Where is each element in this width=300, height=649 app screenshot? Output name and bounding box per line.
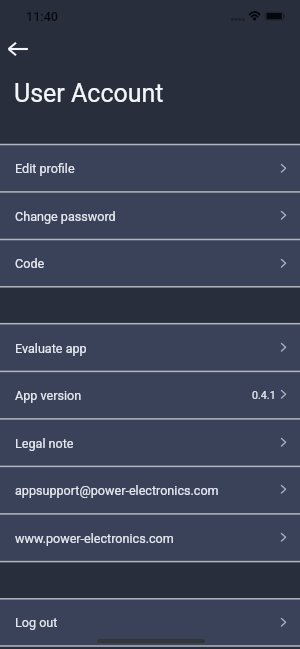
staticText: Code [15, 256, 45, 271]
button[interactable]: Log out [0, 599, 300, 646]
button[interactable]: Back [0, 36, 36, 62]
staticText: 0.4.1 [252, 389, 276, 402]
staticText: www.power-electronics.com [15, 531, 174, 546]
button[interactable]: Legal note [0, 419, 300, 467]
staticText: Legal note [15, 436, 74, 451]
staticText: Log out [15, 615, 58, 630]
button[interactable]: appsupport@power-electronics.com [0, 466, 300, 514]
staticText: Evaluate app [15, 341, 87, 356]
button[interactable]: Evaluate app [0, 324, 300, 372]
button[interactable]: Code [0, 240, 300, 287]
button[interactable]: Edit profile [0, 145, 300, 192]
button[interactable]: www.power-electronics.com [0, 514, 300, 562]
staticText: 11:40 [26, 9, 58, 24]
staticText: App version [15, 388, 82, 403]
staticText: Edit profile [15, 161, 75, 176]
staticText: Change password [15, 209, 116, 224]
staticText: appsupport@power-electronics.com [15, 483, 219, 498]
button[interactable]: Change password [0, 192, 300, 240]
button[interactable]: App version [0, 371, 300, 419]
staticText: User Account [14, 79, 164, 108]
